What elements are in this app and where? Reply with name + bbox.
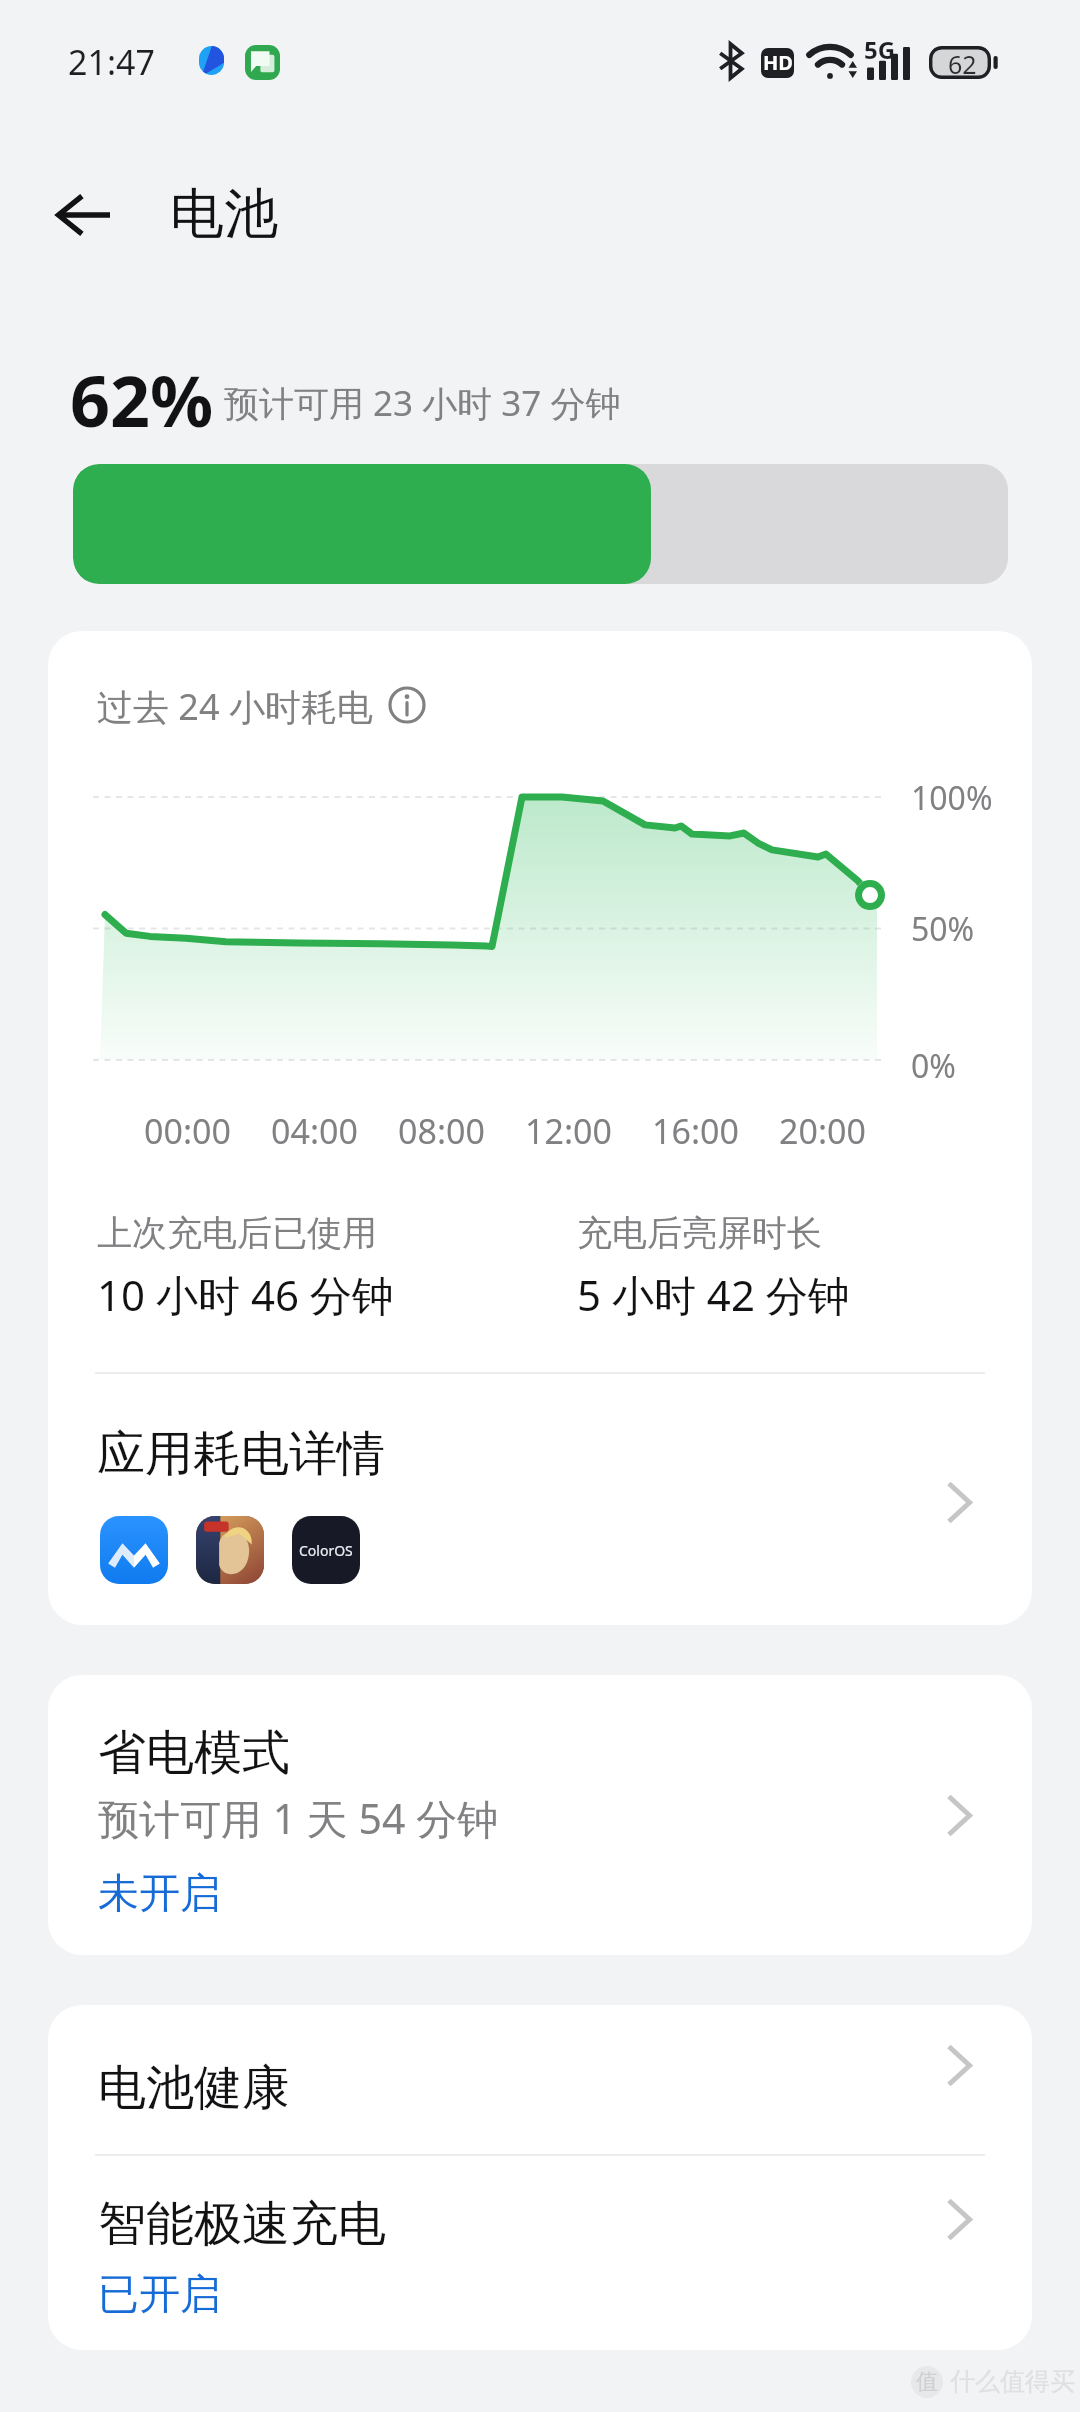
staticText: 12:00 <box>525 1108 612 1154</box>
staticText: 20:00 <box>779 1108 866 1154</box>
staticText: HD <box>763 49 793 76</box>
staticText: ColorOS <box>299 1541 353 1560</box>
staticText: 04:00 <box>271 1108 358 1154</box>
staticText: 应用耗电详情 <box>97 1424 385 1484</box>
staticText: 过去 24 小时耗电 <box>97 682 373 731</box>
staticText: 什么值得买 <box>950 2366 1075 2397</box>
staticText: 5G <box>864 33 896 66</box>
staticText: 08:00 <box>398 1108 485 1154</box>
staticText: 值 <box>916 2368 938 2396</box>
staticText: 电池 <box>170 180 278 248</box>
staticText: 上次充电后已使用 <box>97 1211 377 1255</box>
button[interactable]: 省电模式 <box>48 1675 1032 1955</box>
staticText: 16:00 <box>652 1108 739 1154</box>
staticText: 00:00 <box>144 1108 231 1154</box>
staticText: 21:47 <box>68 39 155 85</box>
staticText: 5 小时 42 分钟 <box>577 1266 850 1323</box>
staticText: 预计可用 1 天 54 分钟 <box>98 1790 498 1846</box>
staticText: 50% <box>911 907 975 951</box>
staticText: 100% <box>911 776 993 820</box>
staticText: 电池健康 <box>98 2058 290 2118</box>
staticText: 10 小时 46 分钟 <box>97 1266 394 1323</box>
staticText: 62 <box>948 47 977 80</box>
staticText: 62% <box>70 352 214 447</box>
staticText: 预计可用 23 小时 37 分钟 <box>224 379 621 427</box>
button[interactable]: Info <box>381 679 433 731</box>
staticText: 省电模式 <box>98 1723 290 1783</box>
staticText: 已开启 <box>98 2269 221 2321</box>
staticText: 0% <box>911 1044 956 1088</box>
staticText: 智能极速充电 <box>98 2194 386 2254</box>
button[interactable]: 应用耗电详情 <box>48 1374 1032 1625</box>
button[interactable]: 智能极速充电 <box>48 2156 1032 2350</box>
button[interactable]: 电池健康 <box>48 2005 1032 2154</box>
staticText: 未开启 <box>98 1868 221 1920</box>
button[interactable]: Back <box>36 167 132 263</box>
staticText: 充电后亮屏时长 <box>577 1211 822 1255</box>
